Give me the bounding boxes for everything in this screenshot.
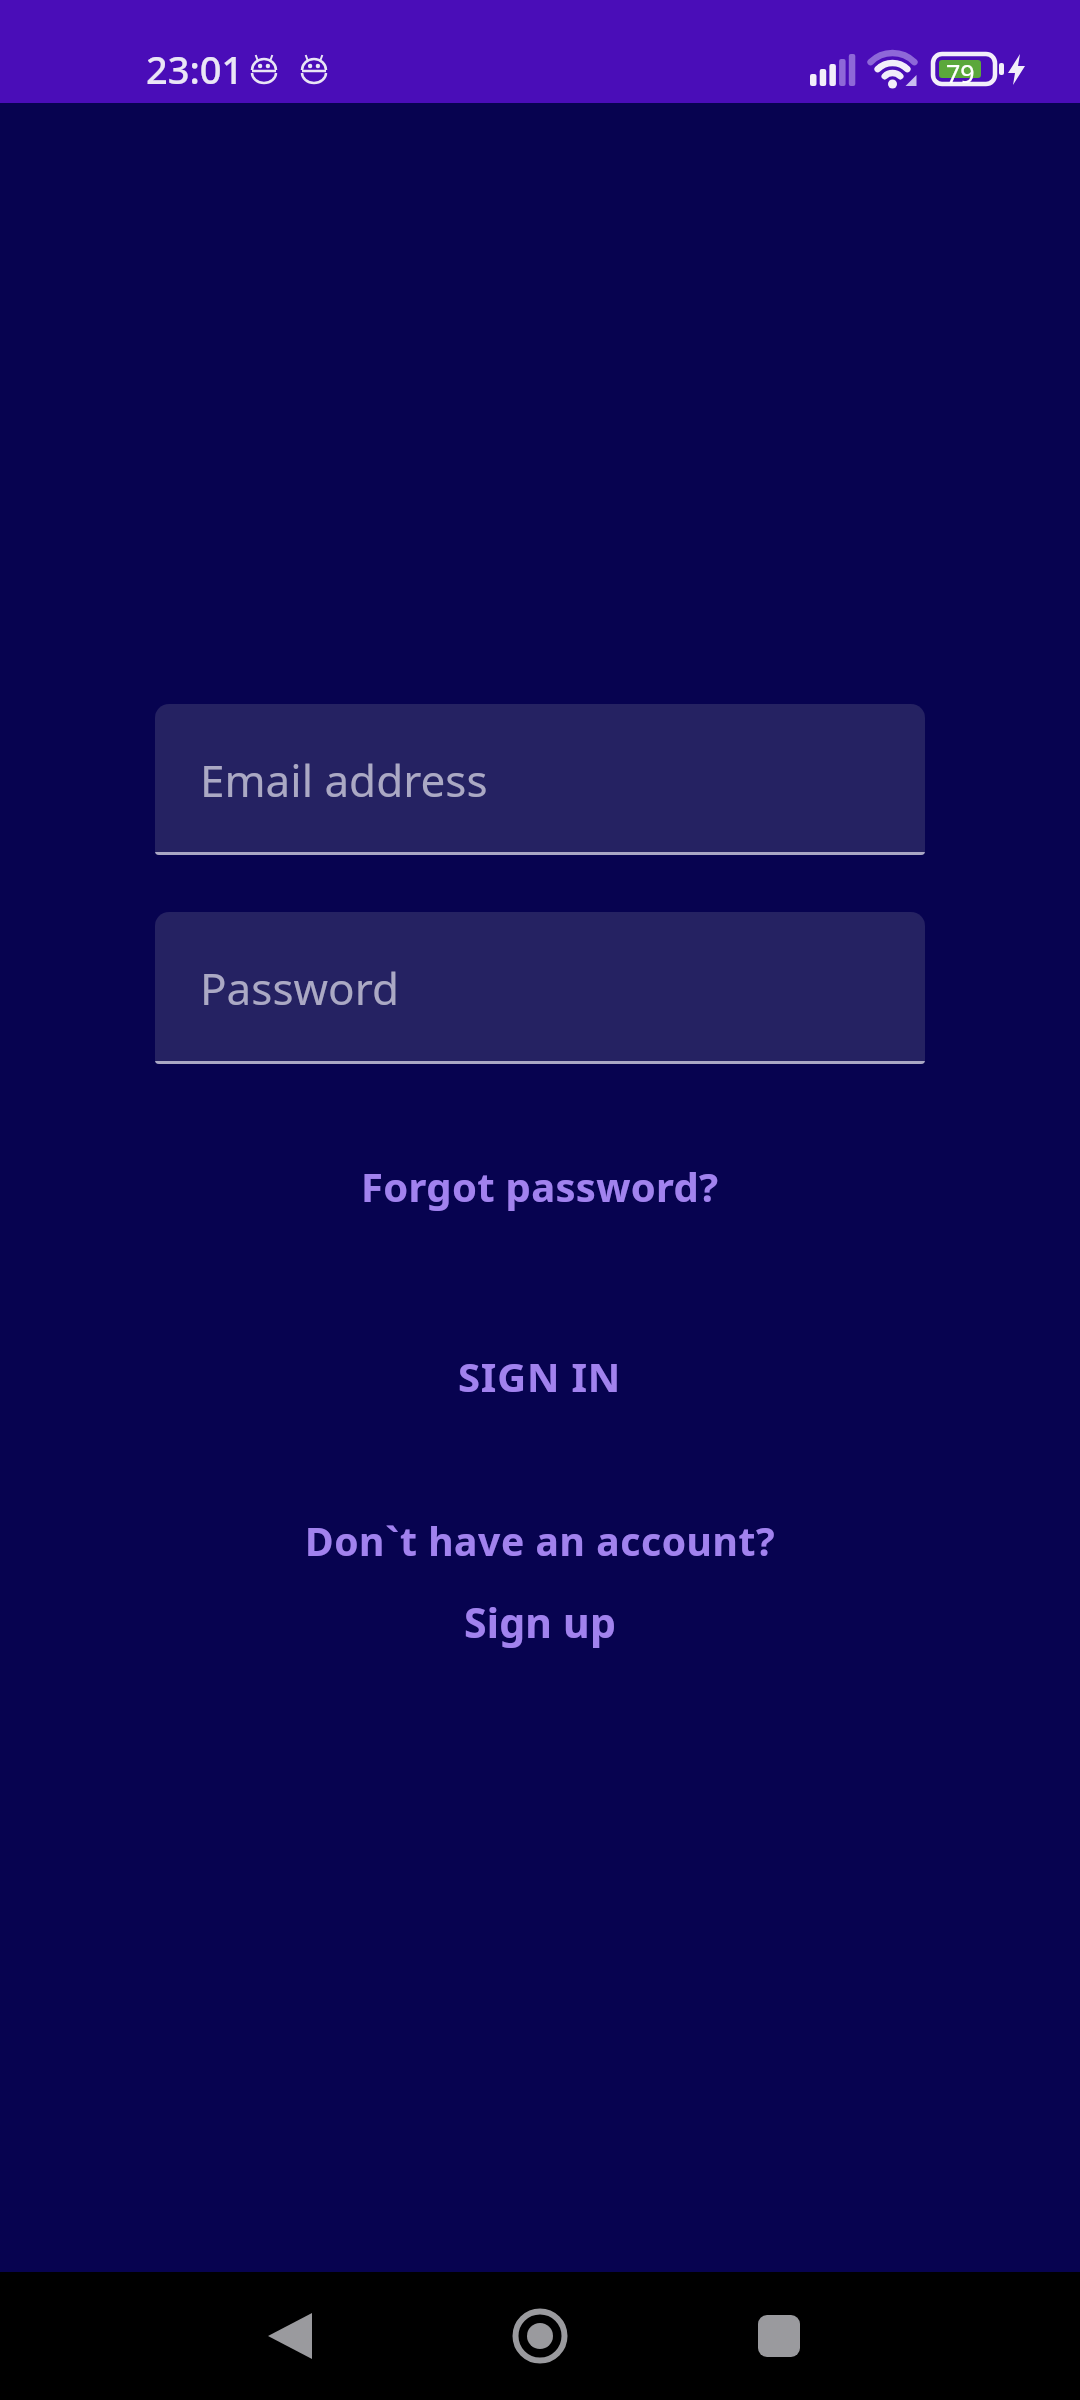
staticText: Email address [200,750,488,810]
button[interactable] [262,2308,318,2364]
button[interactable]: Forgot password? [361,1159,719,1213]
staticText: SIGN IN [458,1349,622,1403]
staticText: Don`t have an account? [305,1514,776,1567]
button[interactable]: SIGN IN [458,1349,622,1403]
staticText: 23:01 [146,43,244,95]
staticText: Forgot password? [361,1159,719,1213]
button[interactable]: Email address [155,704,925,855]
button[interactable]: Password [155,912,925,1064]
staticText: Password [200,958,400,1018]
button[interactable]: Sign up [464,1594,617,1650]
staticText: Sign up [464,1594,617,1650]
button[interactable] [512,2308,568,2364]
staticText: 79 [946,56,975,90]
button[interactable] [751,2308,807,2364]
